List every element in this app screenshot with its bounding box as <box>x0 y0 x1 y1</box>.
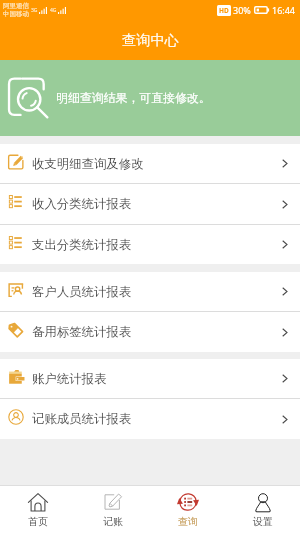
button[interactable]: 查询 <box>150 486 225 533</box>
staticText: 30% <box>233 4 251 16</box>
button[interactable]: 支出分类统计报表 <box>0 225 300 264</box>
staticText: 首页 <box>28 515 48 528</box>
staticText: 16:44 <box>272 4 296 16</box>
button[interactable]: 客户人员统计报表 <box>0 272 300 311</box>
staticText: 4G <box>50 7 57 14</box>
staticText: 明细查询结果，可直接修改。 <box>56 91 211 106</box>
button[interactable]: 记账 <box>75 486 150 533</box>
staticText: 3G <box>31 7 38 14</box>
staticText: 备用标签统计报表 <box>32 324 132 340</box>
staticText: 中国移动 <box>3 10 29 18</box>
staticText: 客户人员统计报表 <box>32 284 132 300</box>
button[interactable]: 记账成员统计报表 <box>0 399 300 439</box>
staticText: 阿里通信 <box>3 2 29 10</box>
staticText: 收支明细查询及修改 <box>32 156 144 172</box>
staticText: 记账成员统计报表 <box>32 411 132 427</box>
staticText: 设置 <box>253 515 273 528</box>
button[interactable]: 账户统计报表 <box>0 359 300 398</box>
staticText: HD <box>219 6 229 15</box>
staticText: 收入分类统计报表 <box>32 196 132 212</box>
button[interactable]: 设置 <box>225 486 300 533</box>
button[interactable]: 收入分类统计报表 <box>0 184 300 224</box>
staticText: 记账 <box>103 515 123 528</box>
staticText: 账户统计报表 <box>32 371 107 387</box>
staticText: 支出分类统计报表 <box>32 237 132 253</box>
staticText: 查询中心 <box>122 31 179 49</box>
button[interactable]: 收支明细查询及修改 <box>0 144 300 183</box>
button[interactable]: 首页 <box>0 486 75 533</box>
staticText: 查询 <box>178 515 198 528</box>
button[interactable]: 备用标签统计报表 <box>0 312 300 352</box>
